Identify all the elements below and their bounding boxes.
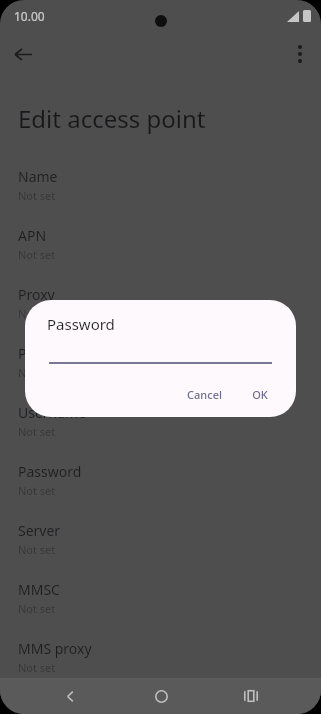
staticText: Not set xyxy=(18,660,56,675)
button[interactable]: Home xyxy=(141,678,181,714)
staticText: Not set xyxy=(18,247,56,262)
staticText: Not set xyxy=(18,424,56,439)
staticText: Port xyxy=(18,344,46,363)
staticText: Not set xyxy=(18,483,56,498)
staticText: APN xyxy=(18,226,47,245)
button[interactable]: Back xyxy=(50,678,90,714)
button[interactable]: Recent apps xyxy=(231,678,271,714)
staticText: Not set xyxy=(18,601,56,616)
staticText: Server xyxy=(18,521,61,540)
button[interactable]: MMS proxy xyxy=(0,637,321,677)
button[interactable]: Username xyxy=(0,401,321,441)
staticText: Cancel xyxy=(187,387,222,402)
staticText: MMS port xyxy=(18,698,83,714)
staticText: Password xyxy=(47,314,115,334)
staticText: Not set xyxy=(18,306,56,321)
staticText: Proxy xyxy=(18,285,55,304)
button[interactable]: Cancel xyxy=(177,382,232,407)
button[interactable]: Server xyxy=(0,519,321,559)
staticText: MMSC xyxy=(18,580,60,599)
button[interactable]: Back xyxy=(6,37,40,71)
button[interactable]: MMS port xyxy=(0,696,321,714)
button[interactable]: Proxy xyxy=(0,283,321,323)
staticText: Not set xyxy=(18,542,56,557)
staticText: Not set xyxy=(18,365,56,380)
button[interactable]: Name xyxy=(0,165,321,205)
staticText: MMS proxy xyxy=(18,639,92,658)
staticText: Name xyxy=(18,167,58,186)
button[interactable]: Password xyxy=(0,460,321,500)
button[interactable]: Port xyxy=(0,342,321,382)
staticText: Password xyxy=(18,462,82,481)
button[interactable]: MMSC xyxy=(0,578,321,618)
staticText: Username xyxy=(18,403,87,422)
button[interactable]: More options xyxy=(284,38,316,70)
staticText: Edit access point xyxy=(18,102,206,135)
staticText: OK xyxy=(252,387,268,402)
staticText: 10.00 xyxy=(14,8,45,24)
button[interactable]: APN xyxy=(0,224,321,264)
button[interactable]: OK xyxy=(242,382,278,407)
staticText: Not set xyxy=(18,188,56,203)
